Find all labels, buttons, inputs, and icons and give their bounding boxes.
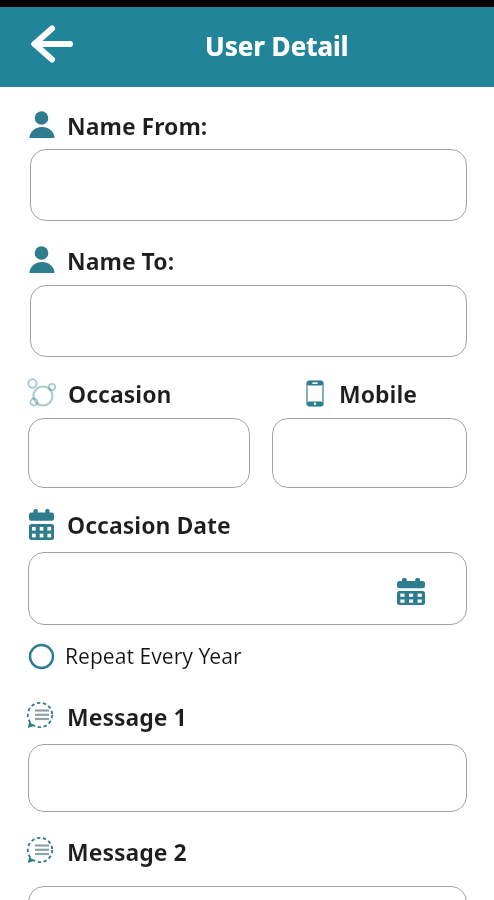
button[interactable] bbox=[28, 552, 467, 625]
staticText: Message 1 bbox=[67, 701, 187, 732]
button[interactable]: Name To: bbox=[29, 244, 175, 276]
button[interactable]: Name From: bbox=[29, 109, 208, 141]
button[interactable]: Message 2 bbox=[26, 835, 187, 867]
button[interactable]: Occasion bbox=[26, 377, 172, 409]
button[interactable] bbox=[272, 418, 467, 488]
button[interactable]: Occasion Date bbox=[29, 508, 231, 540]
button[interactable] bbox=[28, 418, 250, 488]
button[interactable]: Mobile bbox=[306, 377, 418, 409]
button[interactable] bbox=[28, 744, 467, 812]
button[interactable]: Repeat Every Year bbox=[28, 642, 242, 671]
staticText: Name To: bbox=[67, 245, 175, 276]
staticText: Mobile bbox=[339, 378, 418, 409]
button[interactable] bbox=[32, 26, 72, 62]
staticText: Message 2 bbox=[67, 836, 187, 867]
staticText: Repeat Every Year bbox=[65, 642, 242, 671]
button[interactable] bbox=[30, 149, 467, 221]
button[interactable]: Message 1 bbox=[26, 700, 187, 732]
staticText: Occasion Date bbox=[67, 509, 231, 540]
button[interactable] bbox=[30, 285, 467, 357]
staticText: User Detail bbox=[205, 28, 349, 63]
staticText: Occasion bbox=[68, 378, 172, 409]
staticText: Name From: bbox=[67, 110, 208, 141]
button[interactable] bbox=[28, 886, 467, 900]
